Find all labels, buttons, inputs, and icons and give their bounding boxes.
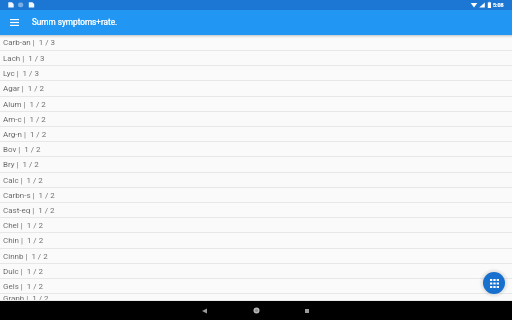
staticText: Carb-an | 1 / 3 — [3, 38, 55, 47]
staticText: Lach | 1 / 3 — [3, 54, 45, 63]
staticText: Chin | 1 / 2 — [3, 236, 44, 245]
button[interactable]: Apps — [483, 272, 505, 294]
button[interactable]: Back — [179, 301, 230, 320]
button[interactable]: Cinnb | 1 / 2 — [0, 249, 512, 264]
staticText: Calc | 1 / 2 — [3, 176, 43, 185]
button[interactable]: Bry | 1 / 2 — [0, 157, 512, 173]
button[interactable]: Cast-eq | 1 / 2 — [0, 203, 512, 218]
staticText: Dulc | 1 / 2 — [3, 267, 43, 276]
staticText: Arg-n | 1 / 2 — [3, 130, 47, 139]
button[interactable]: Calc | 1 / 2 — [0, 173, 512, 188]
staticText: Summ symptoms+rate. — [32, 17, 118, 27]
staticText: Am-c | 1 / 2 — [3, 115, 46, 124]
staticText: Graph | 1 / 2 — [3, 294, 49, 300]
button[interactable]: Agar | 1 / 2 — [0, 81, 512, 97]
button[interactable]: Alum | 1 / 2 — [0, 97, 512, 112]
button[interactable]: Bov | 1 / 2 — [0, 142, 512, 157]
staticText: Gels | 1 / 2 — [3, 282, 43, 291]
button[interactable]: Carbn-s | 1 / 2 — [0, 188, 512, 203]
button[interactable]: Gels | 1 / 2 — [0, 279, 512, 294]
button[interactable]: Lach | 1 / 3 — [0, 51, 512, 66]
button[interactable]: Chin | 1 / 2 — [0, 233, 512, 249]
button[interactable]: Graph | 1 / 2 — [0, 294, 512, 301]
button[interactable]: Open navigation menu — [0, 10, 28, 35]
staticText: Chel | 1 / 2 — [3, 221, 43, 230]
button[interactable]: Chel | 1 / 2 — [0, 218, 512, 233]
staticText: Cast-eq | 1 / 2 — [3, 206, 55, 215]
staticText: Lyc | 1 / 3 — [3, 69, 39, 78]
button[interactable]: Recent apps — [282, 301, 332, 320]
button[interactable]: Dulc | 1 / 2 — [0, 264, 512, 279]
button[interactable]: Am-c | 1 / 2 — [0, 112, 512, 127]
staticText: Cinnb | 1 / 2 — [3, 252, 48, 261]
staticText: Bov | 1 / 2 — [3, 145, 41, 154]
button[interactable]: Lyc | 1 / 3 — [0, 66, 512, 81]
button[interactable]: Home — [230, 301, 282, 320]
staticText: Bry | 1 / 2 — [3, 160, 39, 169]
staticText: Carbn-s | 1 / 2 — [3, 191, 55, 200]
staticText: 5:08 — [493, 2, 504, 8]
staticText: Agar | 1 / 2 — [3, 84, 44, 93]
button[interactable]: Carb-an | 1 / 3 — [0, 35, 512, 51]
button[interactable]: Arg-n | 1 / 2 — [0, 127, 512, 142]
staticText: Alum | 1 / 2 — [3, 100, 46, 109]
